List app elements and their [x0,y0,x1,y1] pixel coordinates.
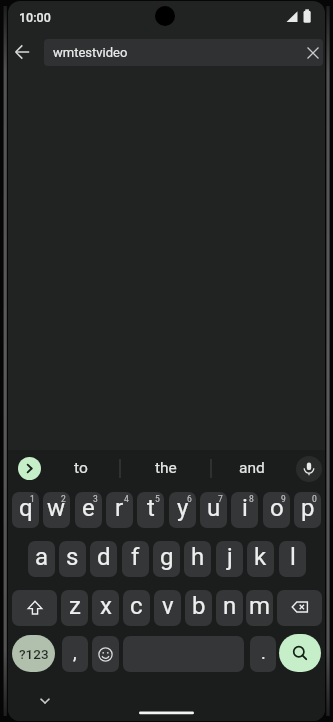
staticText: 0 [312,494,317,504]
staticText: h [191,543,205,571]
button[interactable] [12,590,57,626]
button[interactable]: c [123,590,150,626]
staticText: z [69,592,81,620]
staticText: p [301,494,315,522]
button[interactable] [18,457,41,480]
staticText: e [82,494,95,522]
button[interactable]: q [12,492,39,528]
button[interactable]: l [279,541,306,577]
staticText: 2 [61,494,66,504]
button[interactable]: ?123 [12,635,55,672]
button[interactable] [296,456,322,482]
staticText: k [254,543,267,571]
staticText: b [192,592,206,620]
button[interactable]: g [153,541,180,577]
staticText: the [155,459,177,477]
staticText: wmtestvideo [53,45,128,60]
staticText: 8 [249,494,254,504]
staticText: y [177,494,189,522]
button[interactable] [12,39,38,65]
staticText: . [261,642,266,663]
staticText: and [239,459,265,477]
button[interactable] [279,634,321,672]
button[interactable]: wmtestvideo [44,39,323,66]
button[interactable] [299,39,323,66]
button[interactable]: e [75,492,102,528]
staticText: d [97,543,111,571]
button[interactable]: t [137,492,164,528]
staticText: o [270,494,284,522]
button[interactable]: b [185,590,212,626]
staticText: q [19,494,33,522]
button[interactable]: . [250,636,276,672]
button[interactable] [33,691,57,711]
staticText: 7 [218,494,223,504]
button[interactable]: and [211,450,292,486]
button[interactable] [277,590,322,626]
staticText: c [130,592,143,620]
button[interactable]: z [61,590,88,626]
staticText: w [47,494,66,522]
staticText: l [290,543,296,571]
button[interactable]: i [231,492,258,528]
button[interactable]: y [169,492,196,528]
staticText: v [162,592,174,620]
staticText: s [66,543,79,571]
staticText: j [227,543,233,571]
staticText: r [115,494,124,522]
staticText: f [131,543,140,571]
staticText: 10:00 [19,10,51,25]
staticText: ?123 [19,646,49,662]
staticText: 9 [281,494,286,504]
staticText: u [207,494,221,522]
staticText: m [249,592,271,620]
button[interactable]: u [200,492,227,528]
button[interactable]: m [246,590,273,626]
staticText: n [223,592,237,620]
button[interactable]: h [184,541,211,577]
button[interactable]: a [28,541,55,577]
staticText: to [74,459,88,477]
staticText: 5 [155,494,160,504]
button[interactable]: o [263,492,290,528]
button[interactable] [92,636,119,672]
button[interactable]: to [41,450,120,486]
staticText: x [100,592,112,620]
staticText: 6 [187,494,192,504]
staticText: g [160,543,174,571]
button[interactable]: the [120,450,211,486]
staticText: a [35,543,49,571]
staticText: i [242,494,248,522]
button[interactable]: j [216,541,243,577]
button[interactable]: s [59,541,86,577]
button[interactable]: x [92,590,119,626]
staticText: , [73,642,77,663]
button[interactable]: r [106,492,133,528]
staticText: t [147,494,155,522]
staticText: 4 [124,494,129,504]
button[interactable]: n [216,590,243,626]
button[interactable]: v [154,590,181,626]
button[interactable]: f [122,541,149,577]
button[interactable]: k [247,541,274,577]
button[interactable]: , [62,636,88,672]
button[interactable]: p [294,492,321,528]
staticText: 1 [30,494,35,504]
staticText: 3 [93,494,98,504]
button[interactable]: d [90,541,117,577]
button[interactable]: w [43,492,70,528]
